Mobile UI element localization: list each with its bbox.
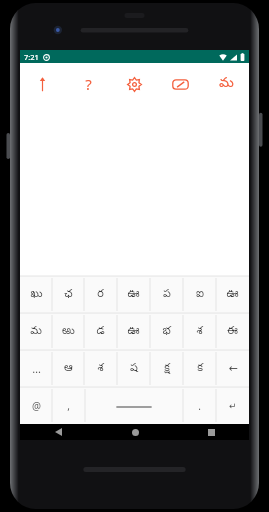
button[interactable]: Back	[20, 424, 97, 440]
staticText: ↵	[229, 401, 237, 411]
staticText: …	[32, 361, 41, 376]
staticText: ఐ	[196, 287, 204, 302]
staticText: ష	[130, 361, 138, 376]
staticText: డ	[96, 324, 105, 339]
staticText: భ	[162, 324, 171, 339]
button[interactable]: Move up	[20, 63, 65, 105]
staticText: ←	[228, 362, 238, 375]
button[interactable]: Period	[183, 387, 216, 424]
button[interactable]: Help	[65, 63, 111, 105]
button[interactable]: ఖు	[20, 276, 52, 313]
button[interactable]: ←	[216, 350, 249, 387]
button[interactable]: Comma	[52, 387, 85, 424]
staticText: ?	[85, 74, 92, 94]
staticText: మ	[219, 75, 234, 94]
button[interactable]: ఊ	[216, 276, 249, 313]
staticText: శ	[97, 361, 104, 376]
button[interactable]: Enter	[216, 387, 249, 424]
staticText: ఱు	[62, 324, 75, 339]
button[interactable]: శ	[183, 313, 216, 350]
staticText: ఊ	[127, 324, 140, 339]
button[interactable]: మ	[20, 313, 52, 350]
button[interactable]: ఛ	[52, 276, 84, 313]
button[interactable]: ష	[117, 350, 150, 387]
button[interactable]: ఱు	[52, 313, 84, 350]
staticText: 7:21	[24, 52, 39, 62]
staticText: ఈ	[227, 324, 238, 339]
staticText: క	[197, 361, 203, 376]
button[interactable]: Home	[97, 424, 173, 440]
button[interactable]: ఈ	[216, 313, 249, 350]
button[interactable]: Settings	[111, 63, 157, 105]
staticText: ఊ	[127, 287, 140, 302]
button[interactable]: భ	[150, 313, 183, 350]
staticText: ఛ	[64, 287, 73, 302]
button[interactable]: క	[183, 350, 216, 387]
staticText: ఆ	[64, 361, 73, 376]
staticText: ఊ	[226, 287, 239, 302]
staticText: మ	[30, 324, 42, 339]
button[interactable]: Space	[85, 387, 183, 424]
staticText: ర	[97, 287, 104, 302]
button[interactable]: ఐ	[183, 276, 216, 313]
button[interactable]: Recent apps	[173, 424, 249, 440]
button[interactable]: క్ష	[150, 350, 183, 387]
button[interactable]: ఊ	[117, 276, 150, 313]
staticText: @	[32, 399, 41, 413]
button[interactable]: Telugu language	[203, 63, 249, 105]
staticText: క్ష	[164, 361, 170, 376]
staticText: ఖు	[30, 287, 43, 302]
button[interactable]: శ	[84, 350, 117, 387]
button[interactable]: ప	[150, 276, 183, 313]
staticText: శ	[196, 324, 203, 339]
button[interactable]: ఊ	[117, 313, 150, 350]
staticText: ప	[163, 287, 171, 302]
staticText: .	[198, 399, 201, 413]
button[interactable]: …	[20, 350, 52, 387]
button[interactable]: At sign	[20, 387, 52, 424]
button[interactable]: ఆ	[52, 350, 84, 387]
staticText: ,	[67, 399, 70, 413]
button[interactable]: ర	[84, 276, 117, 313]
button[interactable]: డ	[84, 313, 117, 350]
button[interactable]: Keyboard	[157, 63, 203, 105]
